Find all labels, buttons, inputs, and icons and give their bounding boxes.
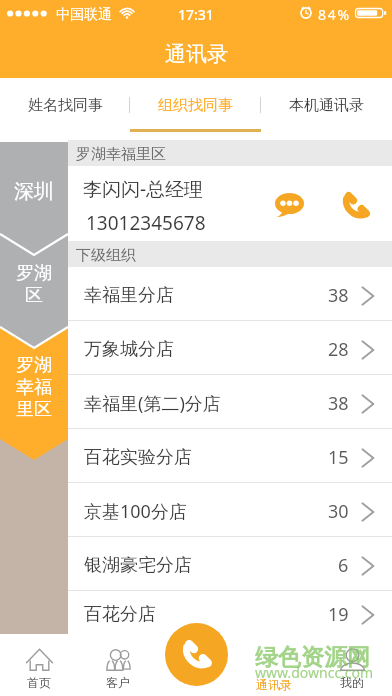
staticText: 通讯录 xyxy=(165,41,228,67)
staticText: 13012345678 xyxy=(86,210,206,236)
staticText: 首页 xyxy=(27,675,51,690)
staticText: 百花分店 xyxy=(84,603,328,626)
staticText: 我的 xyxy=(340,675,364,690)
staticText: 罗湖 区 xyxy=(0,262,68,307)
button[interactable]: 李闪闪-总经理 xyxy=(68,166,392,241)
button[interactable]: 首页 xyxy=(0,634,78,696)
staticText: 百花实验分店 xyxy=(84,446,328,469)
button[interactable]: 我的 xyxy=(313,634,391,696)
staticText: 幸福里分店 xyxy=(84,284,328,307)
button[interactable]: 姓名找同事 xyxy=(0,78,130,134)
button[interactable]: 京基100分店 xyxy=(68,483,392,536)
staticText: 通讯录 xyxy=(256,677,292,692)
staticText: 绿色资源网 xyxy=(255,643,370,672)
button[interactable]: 幸福里分店 xyxy=(68,267,392,320)
button[interactable]: 百花分店 xyxy=(68,591,392,634)
staticText: 组织找同事 xyxy=(158,96,233,115)
button[interactable]: Dial xyxy=(158,618,234,694)
button[interactable]: Message xyxy=(266,181,312,227)
staticText: 17:31 xyxy=(178,5,214,24)
button[interactable]: 幸福里(第二)分店 xyxy=(68,375,392,428)
staticText: 38 xyxy=(328,283,349,308)
staticText: 下级组织 xyxy=(76,246,136,265)
staticText: 万象城分店 xyxy=(84,338,328,361)
staticText: 京基100分店 xyxy=(84,499,328,524)
staticText: 罗湖幸福里区 xyxy=(76,145,166,164)
staticText: 本机通讯录 xyxy=(289,96,364,115)
button[interactable]: 银湖豪宅分店 xyxy=(68,537,392,590)
staticText: 中国联通 xyxy=(56,6,112,24)
button[interactable]: Call xyxy=(333,181,379,227)
button[interactable]: 通讯录 xyxy=(235,634,313,696)
button[interactable]: 万象城分店 xyxy=(68,321,392,374)
staticText: 姓名找同事 xyxy=(28,96,103,115)
staticText: www.downcc.com xyxy=(255,663,374,682)
button[interactable]: 百花实验分店 xyxy=(68,429,392,482)
staticText: 19 xyxy=(328,602,349,627)
staticText: 幸福里(第二)分店 xyxy=(84,391,328,416)
staticText: 李闪闪-总经理 xyxy=(83,176,204,202)
staticText: 15 xyxy=(328,445,349,470)
staticText: 罗湖 幸福 里区 xyxy=(0,354,68,421)
staticText: 28 xyxy=(328,337,349,362)
staticText: 6 xyxy=(338,553,349,578)
staticText: 30 xyxy=(328,499,349,524)
staticText: 客户 xyxy=(106,675,130,690)
staticText: 深圳 xyxy=(0,179,68,204)
staticText: 38 xyxy=(328,391,349,416)
button[interactable]: 组织找同事 xyxy=(130,78,261,134)
staticText: 银湖豪宅分店 xyxy=(84,554,338,577)
button[interactable]: 本机通讯录 xyxy=(261,78,392,134)
button[interactable]: 客户 xyxy=(79,634,157,696)
staticText: 84% xyxy=(318,5,352,24)
